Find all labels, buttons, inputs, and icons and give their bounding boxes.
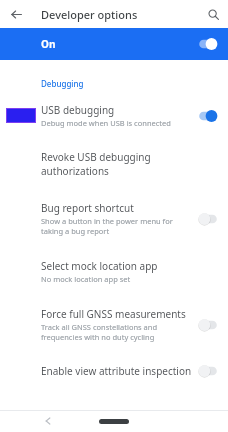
staticText: Enable view attribute inspection xyxy=(41,364,192,378)
button[interactable]: Back xyxy=(40,413,56,429)
button[interactable]: Bug report shortcut xyxy=(0,189,228,246)
staticText: Show a button in the power menu for taki… xyxy=(41,216,173,236)
button[interactable]: Home xyxy=(97,415,131,427)
staticText: Select mock location app xyxy=(41,259,158,273)
button[interactable]: Off xyxy=(198,364,218,378)
button[interactable]: On xyxy=(0,28,228,60)
button[interactable]: Search xyxy=(203,4,223,24)
button[interactable]: Off xyxy=(198,212,218,226)
staticText: USB debugging xyxy=(41,103,115,117)
button[interactable]: On xyxy=(198,37,218,51)
staticText: Debug mode when USB is connected xyxy=(41,118,171,128)
button[interactable]: Revoke USB debugging authorizations xyxy=(0,137,228,189)
button[interactable]: Select mock location app xyxy=(0,246,228,295)
staticText: Developer options xyxy=(41,7,138,22)
staticText: On xyxy=(41,37,56,51)
button[interactable]: On xyxy=(198,109,218,123)
staticText: Revoke USB debugging authorizations xyxy=(41,150,216,178)
staticText: Debugging xyxy=(41,78,228,89)
button[interactable]: Enable view attribute inspection xyxy=(0,352,228,388)
staticText: Track all GNSS constellations and freque… xyxy=(41,322,158,342)
staticText: Force full GNSS measurements xyxy=(41,307,186,321)
button[interactable]: Force full GNSS measurements xyxy=(0,295,228,352)
staticText: No mock location app set xyxy=(41,274,131,284)
button[interactable]: Off xyxy=(198,318,218,332)
button[interactable]: Back xyxy=(6,4,26,24)
staticText: Bug report shortcut xyxy=(41,201,134,215)
button[interactable]: USB debugging xyxy=(0,98,228,137)
